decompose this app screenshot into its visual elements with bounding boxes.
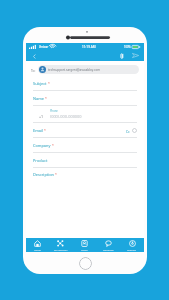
- staticText: Phone: [50, 109, 58, 113]
- button[interactable]: Back: [30, 52, 38, 60]
- button[interactable]: techsupport.sargent@assaabloy.com: [38, 65, 139, 74]
- button[interactable]: IoS Services: [49, 238, 72, 252]
- staticText: Guide: [81, 248, 88, 251]
- staticText: *: [55, 172, 57, 177]
- staticText: Verizon: [39, 45, 49, 49]
- staticText: 100%: [124, 45, 131, 49]
- staticText: *: [52, 143, 54, 148]
- staticText: To:: [31, 68, 36, 72]
- staticText: Company: [33, 143, 51, 148]
- staticText: (000)-000-000000: [50, 114, 82, 119]
- staticText: IoS Services: [54, 248, 68, 251]
- button[interactable]: Home: [26, 238, 49, 252]
- button[interactable]: Settings: [120, 238, 144, 252]
- staticText: Feedback: [103, 248, 114, 251]
- staticText: *: [44, 128, 46, 133]
- staticText: Settings: [127, 248, 137, 251]
- staticText: Email: [33, 128, 43, 133]
- staticText: *: [45, 96, 47, 101]
- staticText: Description: [33, 172, 54, 177]
- staticText: *: [48, 81, 50, 86]
- staticText: Subject: [33, 81, 47, 86]
- button[interactable]: Send: [131, 51, 140, 60]
- button[interactable]: Cc: [126, 128, 137, 133]
- staticText: Cc: [126, 129, 130, 133]
- button[interactable]: Guide: [72, 238, 96, 252]
- staticText: 11:19 AM: [82, 45, 96, 49]
- button[interactable]: Feedback: [96, 238, 120, 252]
- staticText: Name: [33, 96, 44, 101]
- staticText: techsupport.sargent@assaabloy.com: [48, 68, 101, 72]
- button[interactable]: Attach file: [117, 51, 126, 60]
- staticText: Home: [34, 248, 41, 251]
- staticText: Product: [33, 158, 48, 163]
- staticText: +1: [39, 114, 44, 119]
